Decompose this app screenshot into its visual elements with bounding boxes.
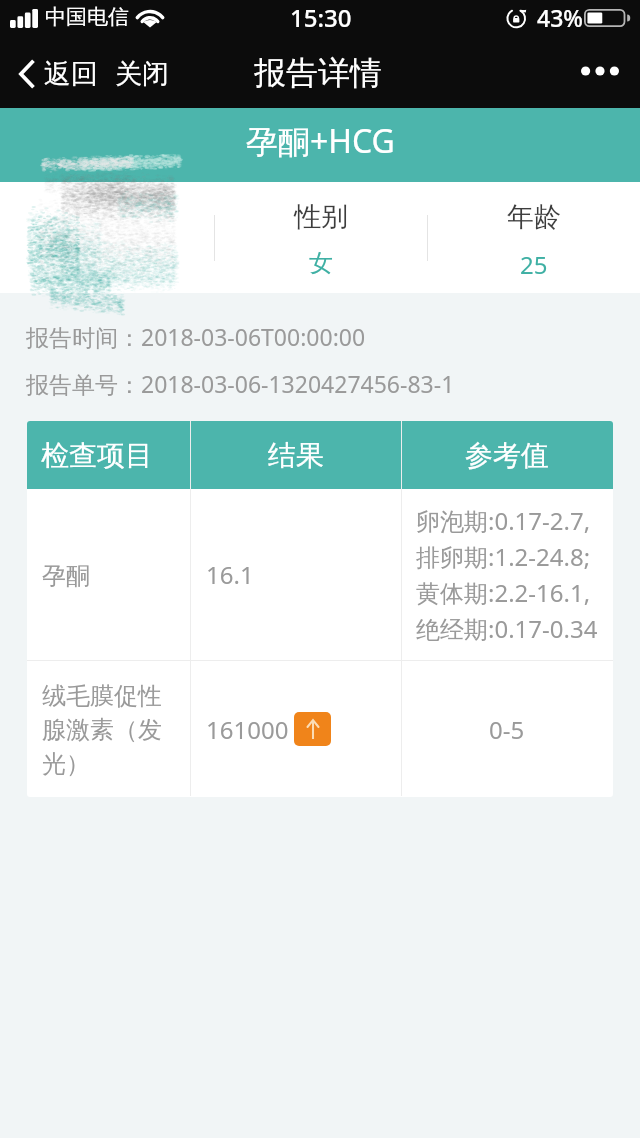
staticText: 女 xyxy=(309,248,333,278)
staticText: 0-5 xyxy=(489,712,525,746)
staticText: 25 xyxy=(520,248,548,281)
other: Back xyxy=(18,59,36,89)
staticText: 报告详情 xyxy=(254,53,382,93)
staticText: 报告单号：2018-03-06-1320427456-83-1 xyxy=(26,368,455,399)
button[interactable]: 孕酮 xyxy=(27,489,613,660)
staticText: 161000 xyxy=(206,713,289,746)
staticText: 绒毛膜促性 腺激素（发 光） xyxy=(42,678,162,780)
staticText: 43% xyxy=(537,2,583,33)
staticText: 检查项目 xyxy=(41,438,153,473)
staticText: 16.1 xyxy=(206,558,254,591)
button[interactable]: 关闭 xyxy=(115,57,169,91)
other: Above reference range xyxy=(294,712,331,746)
staticText: 孕酮 xyxy=(42,558,90,592)
staticText: 性别 xyxy=(294,200,348,234)
staticText: 报告时间：2018-03-06T00:00:00 xyxy=(26,321,366,352)
button[interactable]: More options xyxy=(574,49,626,93)
button[interactable]: Back xyxy=(18,57,98,91)
staticText: 结果 xyxy=(268,438,324,473)
staticText: 返回 xyxy=(44,57,98,91)
staticText: 中国电信 xyxy=(45,4,129,30)
staticText: 孕酮+HCG xyxy=(246,119,395,163)
staticText: 卵泡期:0.17-2.7, 排卵期:1.2-24.8; 黄体期:2.2-16.1… xyxy=(416,503,598,647)
button[interactable]: 绒毛膜促性 腺激素（发 光） xyxy=(27,661,613,797)
staticText: 年龄 xyxy=(507,200,561,234)
staticText: 15:30 xyxy=(290,1,352,34)
staticText: 参考值 xyxy=(465,438,549,473)
